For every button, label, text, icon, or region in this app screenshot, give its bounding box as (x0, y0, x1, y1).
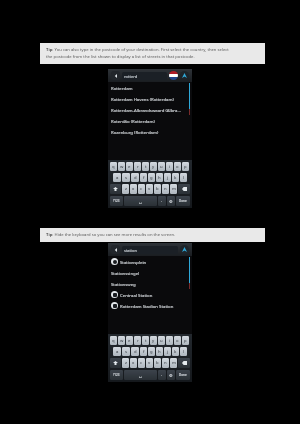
button[interactable]: ␣ (124, 370, 157, 380)
button[interactable]: q (110, 162, 117, 171)
button[interactable]: w (118, 336, 125, 345)
staticText: w (120, 164, 124, 170)
button[interactable]: o (174, 162, 181, 171)
button[interactable]: d (131, 347, 139, 356)
button[interactable]: b (154, 358, 161, 368)
button[interactable]: d (131, 173, 139, 182)
button[interactable]: Centraal Station (108, 289, 192, 300)
button[interactable]: g (148, 173, 155, 182)
button[interactable]: f (140, 173, 147, 182)
button[interactable]: ⚙ (167, 370, 175, 380)
button[interactable]: j (164, 347, 171, 356)
button[interactable]: rotterd (122, 72, 167, 80)
staticText: u (160, 164, 163, 170)
button[interactable]: k (172, 347, 179, 356)
button[interactable]: ⚙ (167, 196, 175, 206)
button[interactable]: t (142, 336, 149, 345)
button[interactable]: Rotterdam Havens (Rotterdam) (108, 93, 192, 104)
button[interactable]: e (126, 162, 133, 171)
button[interactable]: Rotterdam (108, 82, 192, 93)
button[interactable]: x (130, 184, 137, 194)
button[interactable]: c (138, 184, 145, 194)
button[interactable]: p (182, 336, 189, 345)
staticText: rotterd (124, 74, 138, 79)
button[interactable]: p (182, 162, 189, 171)
button[interactable]: . (158, 370, 166, 380)
button[interactable]: l (180, 347, 187, 356)
button[interactable]: t (142, 162, 149, 171)
staticText: Rotterdam (111, 85, 133, 91)
button[interactable]: r (134, 336, 141, 345)
staticText: t (145, 164, 147, 170)
button[interactable]: ?123 (110, 370, 123, 380)
button[interactable]: Navigate (180, 71, 189, 80)
button[interactable]: Done (176, 370, 190, 380)
button[interactable]: y (150, 336, 157, 345)
button[interactable]: z (122, 358, 129, 368)
button[interactable]: n (162, 184, 169, 194)
button[interactable]: o (174, 336, 181, 345)
staticText: v (148, 360, 151, 366)
button[interactable]: v (146, 184, 153, 194)
button[interactable]: q (110, 336, 117, 345)
staticText: m (172, 360, 176, 366)
button[interactable]: ?123 (110, 196, 123, 206)
button[interactable]: Backspace (178, 184, 190, 194)
button[interactable]: a (113, 347, 121, 356)
button[interactable]: Backspace (178, 358, 190, 368)
staticText: c (140, 186, 143, 192)
button[interactable]: Navigate (180, 245, 189, 254)
button[interactable]: m (170, 358, 177, 368)
button[interactable]: w (118, 162, 125, 171)
staticText: l (183, 175, 185, 181)
button[interactable]: e (126, 336, 133, 345)
button[interactable]: l (180, 173, 187, 182)
button[interactable]: Country (169, 71, 178, 80)
button[interactable]: h (156, 347, 163, 356)
button[interactable]: Rotterdam-Albrandswaard (Albra… (108, 104, 192, 115)
staticText: h (158, 175, 161, 181)
button[interactable]: v (146, 358, 153, 368)
button[interactable]: Rotterdam Stadion Station (108, 300, 192, 311)
staticText: e (128, 164, 131, 170)
staticText: Stationsweg (111, 281, 136, 287)
staticText: t (145, 338, 147, 344)
button[interactable]: f (140, 347, 147, 356)
button[interactable]: Back (111, 245, 120, 254)
button[interactable]: k (172, 173, 179, 182)
button[interactable]: g (148, 347, 155, 356)
button[interactable]: Shift (110, 358, 121, 368)
button[interactable]: i (166, 336, 173, 345)
button[interactable]: h (156, 173, 163, 182)
button[interactable]: Done (176, 196, 190, 206)
staticText: a (116, 175, 119, 181)
button[interactable]: Rozenburg (Rotterdam) (108, 126, 192, 137)
button[interactable]: Shift (110, 184, 121, 194)
button[interactable]: m (170, 184, 177, 194)
button[interactable]: u (158, 336, 165, 345)
button[interactable]: s (122, 347, 130, 356)
button[interactable]: i (166, 162, 173, 171)
button[interactable]: Stationsplein (108, 256, 192, 267)
staticText: e (128, 338, 131, 344)
button[interactable]: c (138, 358, 145, 368)
button[interactable]: ␣ (124, 196, 157, 206)
button[interactable]: n (162, 358, 169, 368)
button[interactable]: Stationsweg (108, 278, 192, 289)
button[interactable]: s (122, 173, 130, 182)
button[interactable]: b (154, 184, 161, 194)
button[interactable]: . (158, 196, 166, 206)
button[interactable]: a (113, 173, 121, 182)
staticText: m (172, 186, 176, 192)
staticText: n (164, 360, 167, 366)
button[interactable]: j (164, 173, 171, 182)
button[interactable]: r (134, 162, 141, 171)
button[interactable]: y (150, 162, 157, 171)
button[interactable]: station (122, 246, 178, 254)
button[interactable]: Back (111, 71, 120, 80)
button[interactable]: Stationssingel (108, 267, 192, 278)
button[interactable]: x (130, 358, 137, 368)
button[interactable]: Roterdão (Rotterdam) (108, 115, 192, 126)
button[interactable]: u (158, 162, 165, 171)
button[interactable]: z (122, 184, 129, 194)
